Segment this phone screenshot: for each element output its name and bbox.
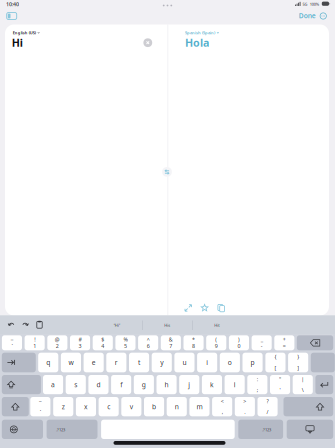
- button[interactable]: Show Sidebar: [7, 12, 17, 19]
- staticText: 10:40: [6, 1, 19, 8]
- button[interactable]: His: [0, 0, 335, 448]
- button[interactable]: z: [0, 0, 335, 448]
- button[interactable]: Next Keyboard: [0, 0, 335, 448]
- staticText: 5: [124, 342, 127, 350]
- button[interactable]: u: [0, 0, 335, 448]
- staticText: ,: [222, 408, 223, 416]
- button[interactable]: Swap languages: [162, 167, 172, 177]
- staticText: m: [196, 402, 202, 411]
- staticText: 2: [56, 342, 59, 350]
- staticText: n: [175, 402, 179, 411]
- button[interactable]: }: [0, 0, 335, 448]
- button[interactable]: ?: [0, 0, 335, 448]
- button[interactable]: s: [0, 0, 335, 448]
- button[interactable]: Spanish (Spain): [185, 30, 221, 36]
- button[interactable]: Shift: [0, 0, 335, 448]
- button[interactable]: &: [0, 0, 335, 448]
- staticText: Hola: [185, 36, 209, 50]
- staticText: Done: [299, 11, 316, 20]
- button[interactable]: >: [0, 0, 335, 448]
- staticText: g: [142, 380, 146, 389]
- button[interactable]: Copy translation: [217, 304, 225, 312]
- staticText: c: [107, 402, 110, 411]
- button[interactable]: Space: [0, 0, 335, 448]
- button[interactable]: k: [0, 0, 335, 448]
- button[interactable]: j: [0, 0, 335, 448]
- button[interactable]: More keys: [0, 0, 335, 448]
- button[interactable]: Done: [0, 0, 335, 24]
- button[interactable]: Account: [320, 12, 327, 19]
- button[interactable]: _: [0, 0, 335, 448]
- button[interactable]: f: [0, 0, 335, 448]
- button[interactable]: |: [0, 0, 335, 448]
- button[interactable]: i: [0, 0, 335, 448]
- button[interactable]: Redo: [22, 321, 29, 328]
- button[interactable]: n: [0, 0, 335, 448]
- button[interactable]: m: [0, 0, 335, 448]
- button[interactable]: $: [0, 0, 335, 448]
- button[interactable]: ^: [0, 0, 335, 448]
- button[interactable]: Paste: [36, 320, 43, 328]
- button[interactable]: w: [0, 0, 335, 448]
- button[interactable]: b: [0, 0, 335, 448]
- button[interactable]: y: [0, 0, 335, 448]
- button[interactable]: Delete: [0, 0, 335, 448]
- button[interactable]: Tab: [0, 0, 335, 448]
- staticText: .?123: [262, 427, 271, 432]
- button[interactable]: “Hi”: [0, 0, 335, 448]
- button[interactable]: Full screen: [184, 304, 192, 312]
- button[interactable]: l: [0, 0, 335, 448]
- button[interactable]: {: [0, 0, 335, 448]
- button[interactable]: Dismiss Keyboard: [0, 0, 335, 448]
- staticText: 6: [147, 342, 150, 350]
- button[interactable]: #: [0, 0, 335, 448]
- button[interactable]: e: [0, 0, 335, 448]
- button[interactable]: v: [0, 0, 335, 448]
- staticText: o: [228, 358, 232, 367]
- button[interactable]: (: [0, 0, 335, 448]
- button[interactable]: !: [0, 0, 335, 448]
- button[interactable]: Shift: [0, 0, 335, 448]
- button[interactable]: <: [0, 0, 335, 448]
- button[interactable]: x: [0, 0, 335, 448]
- button[interactable]: o: [0, 0, 335, 448]
- button[interactable]: h: [0, 0, 335, 448]
- button[interactable]: *: [0, 0, 335, 448]
- staticText: Hit: [214, 322, 219, 328]
- button[interactable]: g: [0, 0, 335, 448]
- staticText: 7: [169, 342, 172, 350]
- button[interactable]: Return: [0, 0, 335, 448]
- button[interactable]: Numbers and symbols: [0, 0, 335, 448]
- button[interactable]: Hit: [0, 0, 335, 448]
- button[interactable]: :: [0, 0, 335, 448]
- staticText: \: [302, 386, 304, 393]
- button[interactable]: ): [0, 0, 335, 448]
- button[interactable]: ~: [0, 0, 335, 448]
- button[interactable]: ~: [0, 0, 335, 448]
- button[interactable]: d: [0, 0, 335, 448]
- button[interactable]: q: [0, 0, 335, 448]
- staticText: /: [267, 408, 269, 416]
- button[interactable]: %: [0, 0, 335, 448]
- button[interactable]: Numbers and symbols: [0, 0, 335, 448]
- staticText: [: [274, 364, 276, 372]
- button[interactable]: English (US): [13, 30, 43, 36]
- button[interactable]: r: [0, 0, 335, 448]
- button[interactable]: Add to favourites: [201, 304, 208, 312]
- button[interactable]: t: [0, 0, 335, 448]
- button[interactable]: p: [0, 0, 335, 448]
- button[interactable]: @: [0, 0, 335, 448]
- staticText: Spanish (Spain): [185, 30, 215, 35]
- button[interactable]: Caps Lock: [0, 0, 335, 448]
- staticText: !: [34, 336, 35, 343]
- button[interactable]: +: [0, 0, 335, 448]
- staticText: w: [68, 358, 73, 367]
- button[interactable]: Clear text: [143, 38, 152, 47]
- staticText: |: [301, 376, 304, 383]
- button[interactable]: a: [0, 0, 335, 448]
- button[interactable]: Undo: [7, 321, 15, 328]
- staticText: t: [138, 358, 140, 367]
- staticText: r: [115, 358, 118, 367]
- button[interactable]: c: [0, 0, 335, 448]
- button[interactable]: ": [0, 0, 335, 448]
